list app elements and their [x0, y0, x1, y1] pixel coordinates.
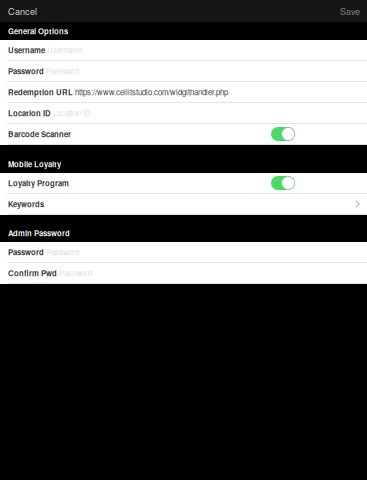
button[interactable]: Location ID	[0, 103, 367, 124]
button[interactable]: Cancel	[0, 0, 43, 22]
staticText: Barcode Scanner	[8, 128, 71, 139]
button[interactable]: Barcode Scanner	[0, 124, 367, 145]
staticText: Admin Password	[8, 227, 70, 238]
staticText: Location ID	[8, 107, 51, 118]
button[interactable]: Confirm Pwd	[0, 263, 367, 284]
button[interactable]: Save	[334, 0, 367, 22]
staticText: https://www.cellitstudio.com/widgithandl…	[75, 86, 228, 97]
staticText: Location ID	[53, 107, 91, 118]
staticText: Redemption URL	[8, 86, 73, 97]
staticText: Password	[46, 246, 79, 257]
button[interactable]: Keywords	[0, 194, 367, 215]
staticText: Mobile Loyalty	[8, 158, 61, 169]
staticText: Password	[8, 246, 44, 257]
staticText: Username	[8, 44, 45, 55]
staticText: Keywords	[8, 198, 44, 209]
button[interactable]: Password	[0, 242, 367, 263]
staticText: Password	[8, 65, 44, 76]
staticText: Loyalty Program	[8, 177, 69, 188]
button[interactable]: Password	[0, 61, 367, 82]
button[interactable]: Redemption URL	[0, 82, 367, 103]
staticText: Username	[47, 44, 82, 55]
button[interactable]: Username	[0, 40, 367, 61]
staticText: Confirm Pwd	[8, 267, 57, 278]
button[interactable]: Loyalty Program	[0, 173, 367, 194]
staticText: General Options	[8, 25, 68, 36]
staticText: Save	[340, 4, 360, 17]
staticText: Password	[46, 65, 79, 76]
staticText: Password	[59, 267, 92, 278]
staticText: Cancel	[8, 4, 37, 17]
